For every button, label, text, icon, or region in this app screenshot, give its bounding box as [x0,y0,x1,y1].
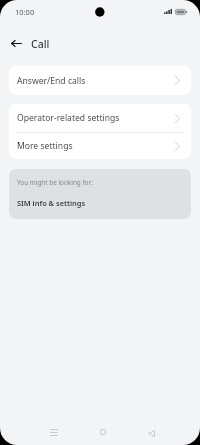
staticText: Answer/End calls [17,75,175,87]
staticText: 10:00 [15,7,35,17]
staticText: Call [31,37,50,51]
button[interactable]: SIM info & settings [17,198,86,208]
button[interactable]: Back [2,29,30,57]
staticText: You might be looking for: [17,178,93,187]
staticText: More settings [17,140,175,152]
button[interactable]: Recent apps [42,420,66,444]
button[interactable]: Answer/End calls [9,66,191,95]
staticText: Operator-related settings [17,112,175,124]
button[interactable]: Back [139,421,163,445]
button[interactable]: Home [91,420,115,444]
button[interactable]: Operator-related settings [9,104,191,132]
button[interactable]: More settings [9,133,191,159]
